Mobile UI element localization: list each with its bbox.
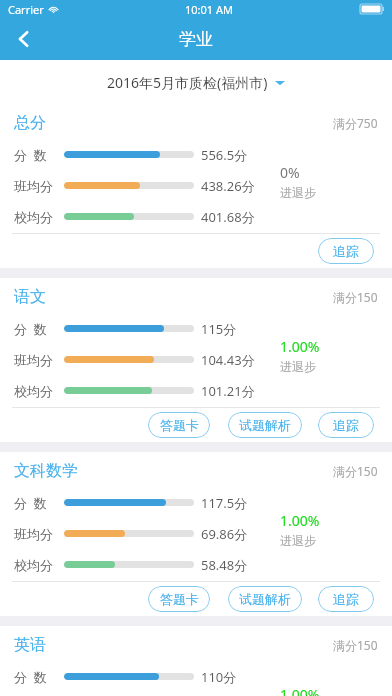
button[interactable]: Back: [0, 18, 48, 60]
staticText: 追踪: [333, 591, 359, 607]
staticText: 115分: [201, 320, 237, 338]
staticText: 总分: [14, 113, 46, 133]
staticText: 分 数: [14, 320, 47, 338]
staticText: 104.43分: [201, 351, 255, 369]
staticText: 分 数: [14, 494, 47, 512]
staticText: 0%: [280, 163, 300, 182]
staticText: 1.00%: [280, 511, 320, 530]
staticText: 答题卡: [160, 591, 199, 607]
staticText: 试题解析: [239, 591, 291, 607]
staticText: 58.48分: [201, 556, 248, 574]
staticText: 答题卡: [160, 417, 199, 433]
button[interactable]: 答题卡: [148, 412, 210, 438]
staticText: 满分150: [333, 463, 378, 479]
staticText: 校均分: [14, 209, 53, 225]
staticText: 校均分: [14, 383, 53, 399]
staticText: 学业: [179, 29, 213, 50]
staticText: 438.26分: [201, 177, 255, 195]
staticText: 班均分: [14, 178, 53, 194]
staticText: 分 数: [14, 146, 47, 164]
staticText: 2016年5月市质检(福州市): [107, 73, 268, 92]
button[interactable]: 答题卡: [148, 586, 210, 612]
staticText: 进退步: [280, 359, 316, 374]
staticText: 69.86分: [201, 525, 248, 543]
staticText: 10:01 AM: [185, 2, 233, 17]
staticText: 1.00%: [280, 337, 320, 356]
staticText: 401.68分: [201, 208, 255, 226]
staticText: 追踪: [333, 417, 359, 433]
button[interactable]: 追踪: [318, 586, 374, 612]
staticText: 110分: [201, 668, 237, 686]
button[interactable]: 2016年5月市质检(福州市): [0, 60, 392, 104]
staticText: 101.21分: [201, 382, 255, 400]
button[interactable]: 试题解析: [228, 586, 302, 612]
staticText: 文科数学: [14, 461, 78, 481]
button[interactable]: 追踪: [318, 412, 374, 438]
staticText: 分 数: [14, 668, 47, 686]
staticText: 满分750: [333, 115, 378, 131]
staticText: 1.00%: [280, 685, 320, 696]
staticText: 英语: [14, 635, 46, 655]
button[interactable]: 追踪: [318, 238, 374, 264]
staticText: 满分150: [333, 289, 378, 305]
staticText: 追踪: [333, 243, 359, 259]
staticText: 进退步: [280, 533, 316, 548]
staticText: 试题解析: [239, 417, 291, 433]
staticText: 117.5分: [201, 494, 248, 512]
staticText: Carrier: [8, 2, 44, 17]
staticText: 班均分: [14, 526, 53, 542]
staticText: 校均分: [14, 557, 53, 573]
staticText: 进退步: [280, 185, 316, 200]
staticText: 556.5分: [201, 146, 248, 164]
staticText: 满分150: [333, 637, 378, 653]
button[interactable]: 试题解析: [228, 412, 302, 438]
staticText: 语文: [14, 287, 46, 307]
staticText: 班均分: [14, 352, 53, 368]
